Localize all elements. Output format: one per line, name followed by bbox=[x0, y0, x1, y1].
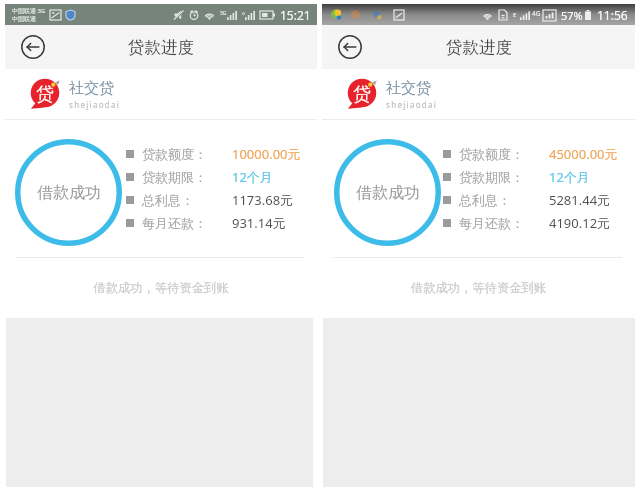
staticText: 4190.12元 bbox=[549, 214, 611, 232]
staticText: 社交贷 bbox=[386, 79, 431, 98]
staticText: 贷 bbox=[353, 83, 371, 106]
staticText: 社交贷 bbox=[69, 79, 114, 98]
staticText: 45000.00元 bbox=[549, 145, 618, 163]
staticText: 12个月 bbox=[232, 168, 273, 186]
staticText: 15:21 bbox=[280, 7, 311, 23]
staticText: 贷款额度： bbox=[459, 146, 549, 162]
staticText: 贷款额度： bbox=[142, 146, 232, 162]
staticText: 总利息： bbox=[459, 192, 549, 208]
staticText: shejiaodai bbox=[69, 99, 121, 110]
staticText: 57% bbox=[561, 8, 583, 23]
staticText: shejiaodai bbox=[386, 99, 438, 110]
button[interactable]: Back bbox=[334, 31, 366, 63]
staticText: 每月还款： bbox=[459, 215, 549, 231]
staticText: 11:56 bbox=[597, 7, 628, 23]
staticText: 5281.44元 bbox=[549, 191, 611, 209]
staticText: 3G bbox=[220, 10, 227, 17]
staticText: 总利息： bbox=[142, 192, 232, 208]
staticText: 贷款进度 bbox=[446, 37, 512, 58]
staticText: 借款成功，等待资金到账 bbox=[322, 280, 635, 295]
staticText: 中国联通 bbox=[12, 15, 36, 23]
staticText: 12个月 bbox=[549, 168, 590, 186]
staticText: 贷 bbox=[36, 83, 54, 106]
staticText: 10000.00元 bbox=[232, 145, 301, 163]
staticText: 借款成功 bbox=[356, 183, 420, 203]
staticText: 4G bbox=[532, 9, 541, 18]
staticText: 借款成功，等待资金到账 bbox=[5, 280, 317, 295]
staticText: 贷款进度 bbox=[128, 37, 194, 58]
staticText: 贷款期限： bbox=[459, 169, 549, 185]
staticText: E bbox=[513, 11, 517, 19]
staticText: 贷款期限： bbox=[142, 169, 232, 185]
button[interactable]: Back bbox=[17, 31, 49, 63]
staticText: 1173.68元 bbox=[232, 191, 294, 209]
staticText: 931.14元 bbox=[232, 214, 286, 232]
staticText: 每月还款： bbox=[142, 215, 232, 231]
staticText: 中国联通 3G bbox=[12, 7, 46, 15]
staticText: 借款成功 bbox=[37, 183, 101, 203]
